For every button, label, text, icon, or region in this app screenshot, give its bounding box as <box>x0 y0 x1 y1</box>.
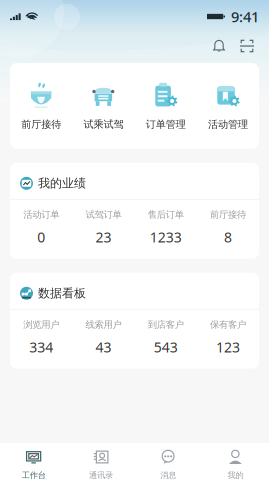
staticText: 0 <box>37 228 45 247</box>
button[interactable]: 前厅接待 <box>10 82 72 131</box>
staticText: 543 <box>154 338 178 357</box>
button[interactable]: 通讯录 <box>67 450 134 480</box>
button[interactable]: 活动管理 <box>197 82 259 131</box>
staticText: 334 <box>29 338 53 357</box>
staticText: 消息 <box>160 470 176 480</box>
staticText: 数据看板 <box>38 286 86 301</box>
staticText: 工作台 <box>22 470 46 480</box>
staticText: 保有客户 <box>210 319 246 331</box>
staticText: 浏览用户 <box>23 319 59 331</box>
button[interactable]: 订单管理 <box>134 82 197 131</box>
staticText: 线索用户 <box>85 319 121 331</box>
staticText: 23 <box>95 228 111 247</box>
staticText: 前厅接待 <box>210 209 246 221</box>
staticText: 123 <box>216 338 240 357</box>
staticText: 前厅接待 <box>21 118 61 131</box>
staticText: 活动管理 <box>208 118 248 131</box>
button[interactable]: 试乘试驾 <box>72 82 134 131</box>
staticText: 试驾订单 <box>85 209 121 221</box>
button[interactable]: 通知 <box>207 34 231 57</box>
button[interactable]: 消息 <box>134 450 202 480</box>
staticText: 8 <box>224 228 232 247</box>
staticText: 1233 <box>150 228 182 247</box>
staticText: 订单管理 <box>146 118 186 131</box>
button[interactable]: 扫一扫 <box>234 34 260 57</box>
staticText: 我的业绩 <box>38 176 86 191</box>
staticText: 到店客户 <box>148 319 184 331</box>
button[interactable]: 工作台 <box>0 450 67 480</box>
staticText: 试乘试驾 <box>83 118 123 131</box>
staticText: 通讯录 <box>89 470 113 480</box>
staticText: 活动订单 <box>23 209 59 221</box>
staticText: 9:41 <box>231 7 259 26</box>
staticText: 43 <box>95 338 111 357</box>
button[interactable]: 我的 <box>202 450 269 480</box>
staticText: 售后订单 <box>148 209 184 221</box>
staticText: 我的 <box>227 470 243 480</box>
